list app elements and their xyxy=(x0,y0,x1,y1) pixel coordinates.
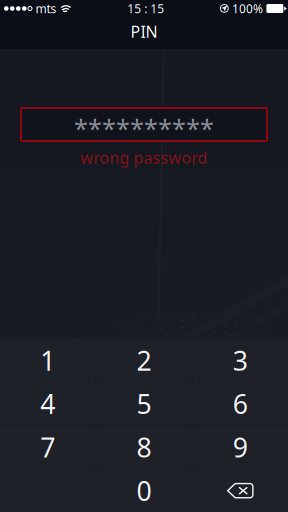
staticText: 4 xyxy=(40,386,55,421)
button[interactable]: 7 xyxy=(0,426,95,468)
staticText: PIN xyxy=(130,21,157,42)
staticText: 2 xyxy=(136,343,151,378)
staticText: 7 xyxy=(40,429,55,465)
button[interactable]: Delete xyxy=(192,469,288,512)
button[interactable]: 8 xyxy=(96,426,192,468)
button[interactable]: 4 xyxy=(0,382,95,425)
button[interactable]: 5 xyxy=(96,382,192,425)
staticText: ********** xyxy=(74,111,214,145)
staticText: 6 xyxy=(233,386,248,421)
staticText: 1 xyxy=(40,343,55,378)
staticText: 9 xyxy=(233,429,248,465)
staticText: 8 xyxy=(136,429,151,465)
button[interactable]: 2 xyxy=(96,339,192,382)
staticText: 0 xyxy=(136,473,151,508)
button[interactable]: 6 xyxy=(192,382,288,425)
staticText: mts xyxy=(35,0,56,16)
button[interactable]: 0 xyxy=(96,469,192,512)
staticText: 3 xyxy=(233,343,248,378)
staticText: 100% xyxy=(232,0,263,16)
staticText: 5 xyxy=(136,386,151,421)
button[interactable]: 1 xyxy=(0,339,95,382)
button[interactable]: 9 xyxy=(192,426,288,468)
button[interactable]: 3 xyxy=(192,339,288,382)
staticText: wrong password xyxy=(80,147,207,168)
staticText: 15 : 15 xyxy=(127,0,164,16)
